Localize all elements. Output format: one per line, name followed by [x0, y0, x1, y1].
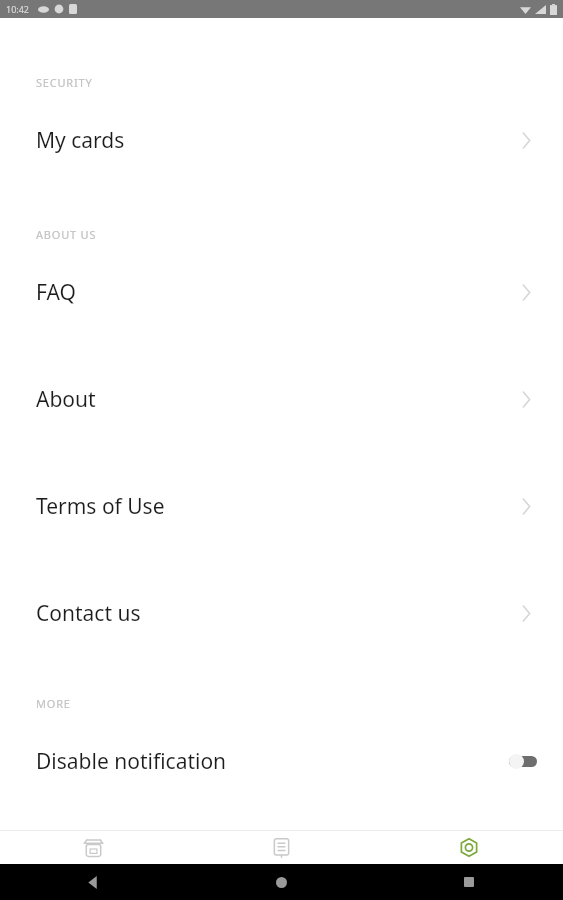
staticText: About [36, 385, 522, 414]
button[interactable]: Terms of Use [0, 489, 563, 523]
button[interactable]: About [0, 382, 563, 416]
staticText: SECURITY [36, 75, 563, 90]
staticText: MORE [36, 696, 563, 711]
button[interactable]: Back [0, 864, 187, 900]
button[interactable]: Recent apps [375, 864, 563, 900]
staticText: FAQ [36, 278, 522, 307]
staticText: My cards [36, 126, 522, 155]
button[interactable]: Disable notification [0, 744, 563, 778]
other: Disable notification toggle [509, 754, 537, 769]
staticText: Disable notification [36, 747, 509, 776]
staticText: Terms of Use [36, 492, 522, 521]
button[interactable]: Contact us [0, 596, 563, 630]
button[interactable]: Shop [0, 831, 187, 864]
staticText: 10:42 [6, 3, 30, 15]
staticText: Contact us [36, 599, 522, 628]
button[interactable]: My cards [0, 123, 563, 157]
button[interactable]: FAQ [0, 275, 563, 309]
button[interactable]: Settings [375, 831, 563, 864]
button[interactable]: Home [187, 864, 375, 900]
staticText: ABOUT US [36, 227, 563, 242]
button[interactable]: Orders [187, 831, 375, 864]
